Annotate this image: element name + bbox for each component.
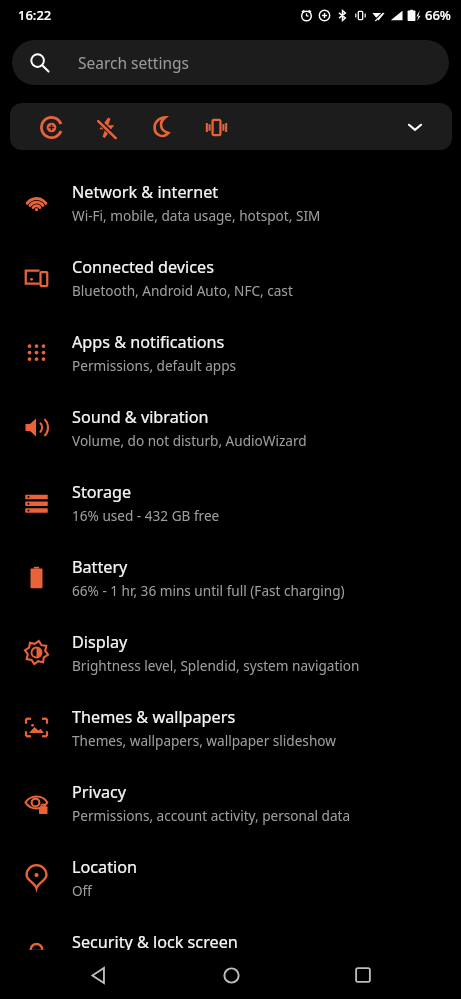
button[interactable]: Privacy bbox=[0, 765, 461, 840]
button[interactable]: Storage bbox=[0, 465, 461, 540]
button[interactable]: Vibrate bbox=[199, 110, 233, 144]
staticText: 16:22 bbox=[18, 6, 52, 24]
button[interactable]: Home bbox=[209, 953, 253, 997]
staticText: Permissions, account activity, personal … bbox=[72, 806, 351, 825]
staticText: Sound & vibration bbox=[72, 406, 209, 428]
staticText: Display bbox=[72, 631, 128, 653]
staticText: Search settings bbox=[78, 52, 189, 73]
staticText: 66% bbox=[425, 6, 451, 24]
button[interactable]: Location bbox=[0, 840, 461, 915]
staticText: Battery bbox=[72, 556, 128, 578]
staticText: Bluetooth, Android Auto, NFC, cast bbox=[72, 281, 293, 300]
button[interactable]: Battery bbox=[0, 540, 461, 615]
button[interactable]: Apps & notifications bbox=[0, 315, 461, 390]
button[interactable]: Sound & vibration bbox=[0, 390, 461, 465]
button[interactable]: Display bbox=[0, 615, 461, 690]
staticText: Wi-Fi, mobile, data usage, hotspot, SIM bbox=[72, 206, 321, 225]
staticText: Apps & notifications bbox=[72, 331, 225, 353]
button[interactable]: Security & lock screen bbox=[0, 915, 461, 990]
button[interactable]: Back bbox=[76, 953, 120, 997]
button[interactable]: Connected devices bbox=[0, 240, 461, 315]
button[interactable]: Do not disturb bbox=[34, 110, 68, 144]
staticText: 16% used - 432 GB free bbox=[72, 506, 220, 525]
staticText: Storage bbox=[72, 481, 132, 503]
staticText: Themes & wallpapers bbox=[72, 706, 236, 728]
button[interactable]: Flashlight off bbox=[89, 110, 123, 144]
staticText: Fingerprint, face unlock, encryption bbox=[72, 956, 299, 975]
button[interactable]: Night mode bbox=[144, 110, 178, 144]
staticText: Permissions, default apps bbox=[72, 356, 237, 375]
button[interactable]: Recent apps bbox=[341, 953, 385, 997]
button[interactable]: Themes & wallpapers bbox=[0, 690, 461, 765]
staticText: Brightness level, Splendid, system navig… bbox=[72, 656, 360, 675]
button[interactable]: Expand bbox=[400, 112, 430, 142]
staticText: Volume, do not disturb, AudioWizard bbox=[72, 431, 307, 450]
staticText: Connected devices bbox=[72, 256, 214, 278]
button[interactable]: Search settings bbox=[12, 40, 449, 85]
staticText: Security & lock screen bbox=[72, 931, 238, 953]
staticText: Themes, wallpapers, wallpaper slideshow bbox=[72, 731, 336, 750]
staticText: 66% - 1 hr, 36 mins until full (Fast cha… bbox=[72, 581, 345, 600]
staticText: Privacy bbox=[72, 781, 126, 803]
button[interactable]: Network & internet bbox=[0, 165, 461, 240]
staticText: Off bbox=[72, 881, 92, 900]
staticText: Location bbox=[72, 856, 137, 878]
staticText: Network & internet bbox=[72, 181, 219, 203]
